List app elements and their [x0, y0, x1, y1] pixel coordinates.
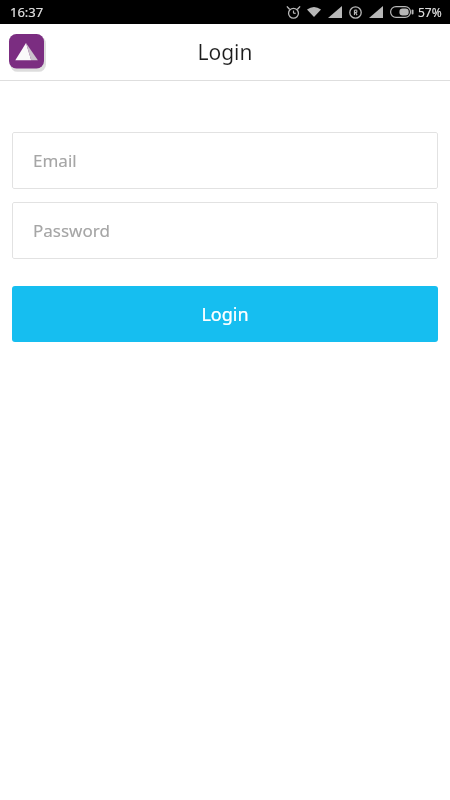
button[interactable]: App logo: [9, 34, 46, 71]
button[interactable]: Password: [12, 202, 438, 259]
staticText: 57%: [418, 4, 442, 20]
button[interactable]: Email: [12, 132, 438, 189]
button[interactable]: Login: [12, 286, 438, 342]
staticText: Login: [197, 38, 253, 67]
staticText: 16:37: [10, 3, 44, 21]
staticText: Email: [33, 149, 77, 172]
staticText: Password: [33, 219, 110, 242]
staticText: Login: [201, 302, 249, 327]
